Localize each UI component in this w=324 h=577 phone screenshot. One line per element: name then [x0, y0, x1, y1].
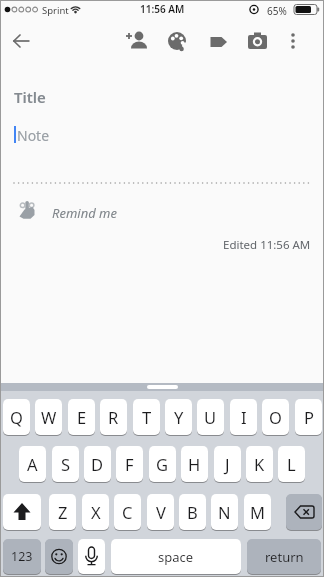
staticText: Z [58, 501, 68, 523]
staticText: B [187, 501, 198, 523]
button[interactable]: space [111, 539, 241, 575]
button[interactable]: Y [165, 399, 192, 436]
staticText: Title [14, 87, 46, 107]
button[interactable]: Remind me [14, 196, 174, 222]
button[interactable] [243, 27, 271, 55]
button[interactable]: A [19, 446, 46, 483]
staticText: M [250, 501, 265, 523]
button[interactable]: S [52, 446, 79, 483]
staticText: 11:56 AM [140, 2, 185, 16]
staticText: Edited 11:56 AM [223, 237, 311, 253]
button[interactable] [163, 27, 191, 55]
button[interactable]: L [278, 446, 305, 483]
button[interactable]: R [100, 399, 127, 436]
staticText: E [77, 406, 87, 428]
staticText: Sprint [42, 4, 69, 17]
button[interactable]: X [82, 494, 109, 531]
button[interactable] [203, 27, 231, 55]
staticText: C [122, 501, 133, 523]
button[interactable]: G [149, 446, 176, 483]
staticText: U [204, 406, 217, 428]
staticText: Y [174, 406, 184, 428]
staticText: K [254, 453, 265, 475]
button[interactable]: O [262, 399, 289, 436]
button[interactable]: Z [49, 494, 76, 531]
button[interactable] [45, 539, 73, 575]
staticText: A [27, 453, 38, 475]
staticText: T [142, 406, 152, 428]
button[interactable]: Note [8, 121, 316, 147]
button[interactable]: E [68, 399, 95, 436]
staticText: Remind me [52, 204, 117, 222]
button[interactable]: Title [8, 82, 316, 108]
button[interactable]: C [114, 494, 141, 531]
button[interactable]: J [214, 446, 241, 483]
button[interactable]: P [295, 399, 322, 436]
button[interactable]: return [247, 539, 321, 575]
staticText: I [241, 406, 247, 428]
button[interactable]: N [211, 494, 238, 531]
staticText: Q [10, 406, 23, 428]
button[interactable]: F [116, 446, 143, 483]
staticText: R [108, 406, 119, 428]
staticText: O [269, 406, 282, 428]
button[interactable] [3, 494, 41, 531]
staticText: L [287, 453, 296, 475]
staticText: H [188, 453, 201, 475]
button[interactable]: B [179, 494, 206, 531]
button[interactable] [279, 27, 307, 55]
staticText: F [125, 453, 134, 475]
button[interactable]: W [35, 399, 62, 436]
button[interactable] [78, 539, 105, 575]
button[interactable]: T [133, 399, 160, 436]
staticText: P [304, 406, 314, 428]
staticText: 65% [267, 4, 287, 18]
button[interactable]: D [84, 446, 111, 483]
staticText: J [225, 453, 230, 475]
staticText: return [265, 548, 304, 566]
staticText: Note [17, 126, 50, 145]
button[interactable]: H [181, 446, 208, 483]
staticText: S [61, 453, 71, 475]
staticText: N [218, 501, 231, 523]
staticText: 123 [11, 548, 33, 565]
button[interactable]: 123 [3, 539, 41, 575]
staticText: V [156, 501, 166, 523]
button[interactable]: V [147, 494, 174, 531]
button[interactable] [123, 27, 151, 55]
button[interactable]: I [230, 399, 257, 436]
button[interactable]: M [244, 494, 271, 531]
staticText: W [41, 406, 57, 428]
staticText: D [91, 453, 104, 475]
staticText: X [91, 501, 101, 523]
button[interactable]: U [197, 399, 224, 436]
staticText: G [156, 453, 169, 475]
button[interactable]: Q [3, 399, 30, 436]
button[interactable] [286, 494, 322, 531]
button[interactable]: K [246, 446, 273, 483]
staticText: space [158, 548, 194, 566]
button[interactable] [8, 27, 36, 55]
